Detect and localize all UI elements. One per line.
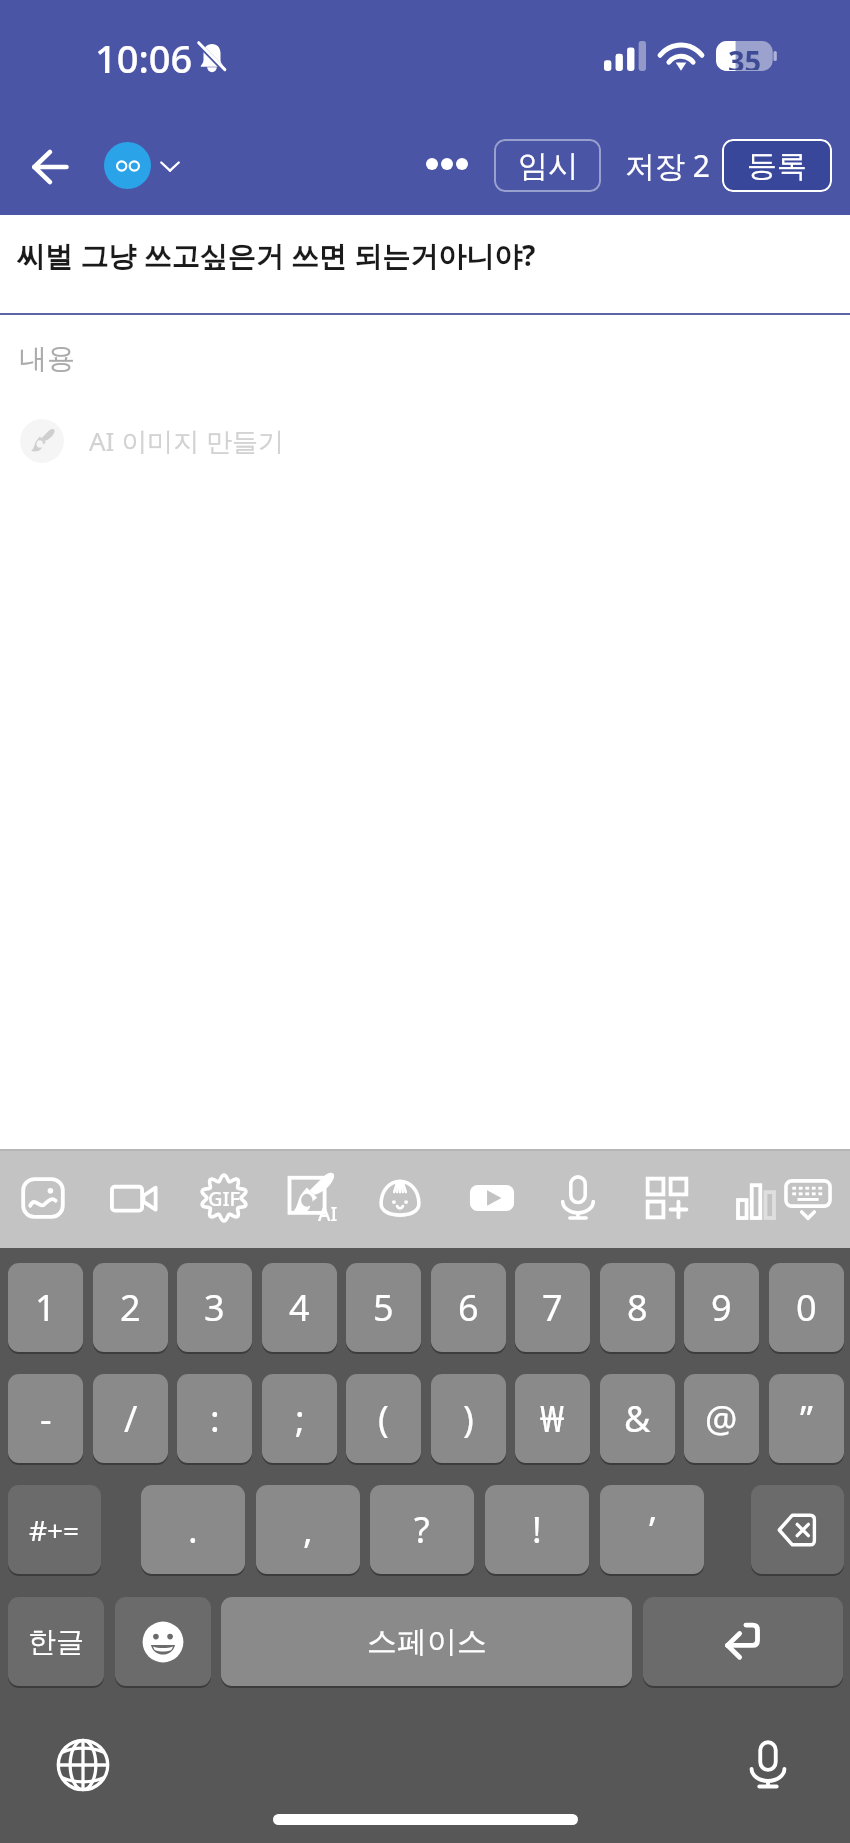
staticText: @ — [705, 1394, 738, 1443]
staticText: AI — [318, 1201, 338, 1227]
button[interactable]: Back — [14, 131, 86, 203]
button[interactable]: Backspace — [751, 1485, 844, 1574]
button[interactable]: Voice — [543, 1163, 613, 1233]
button[interactable]: 한글 — [8, 1597, 104, 1686]
staticText: ; — [295, 1394, 305, 1443]
staticText: 저장 2 — [625, 145, 710, 186]
button[interactable]: AI image — [277, 1163, 347, 1233]
staticText: & — [624, 1394, 651, 1443]
button[interactable]: 1 — [8, 1263, 83, 1352]
button[interactable] — [104, 142, 184, 189]
staticText: 9 — [711, 1283, 732, 1332]
staticText: 4 — [289, 1283, 310, 1332]
button[interactable]: Change language — [48, 1730, 118, 1800]
button[interactable]: More options — [418, 137, 476, 191]
button[interactable]: AI 이미지 만들기 — [20, 419, 284, 463]
button[interactable]: 9 — [684, 1263, 759, 1352]
staticText: 내용 — [19, 341, 75, 376]
staticText: 0 — [796, 1283, 817, 1332]
staticText: #+= — [29, 1511, 80, 1549]
button[interactable]: Poll — [721, 1163, 791, 1233]
staticText: GIF — [208, 1185, 241, 1212]
staticText: ! — [532, 1505, 542, 1554]
staticText: : — [210, 1394, 220, 1443]
staticText: 7 — [542, 1283, 563, 1332]
staticText: ) — [463, 1394, 474, 1443]
staticText: 6 — [458, 1283, 479, 1332]
staticText: - — [40, 1394, 52, 1443]
button[interactable]: ( — [346, 1374, 421, 1463]
staticText: ( — [378, 1394, 389, 1443]
button[interactable]: , — [256, 1485, 360, 1574]
button[interactable]: 저장 2 — [617, 139, 717, 192]
staticText: 임시 — [518, 147, 578, 185]
button[interactable]: 7 — [515, 1263, 590, 1352]
staticText: 8 — [627, 1283, 648, 1332]
button[interactable]: ; — [262, 1374, 337, 1463]
button[interactable]: ₩ — [515, 1374, 590, 1463]
staticText: ₩ — [540, 1394, 565, 1443]
button[interactable]: 2 — [93, 1263, 168, 1352]
staticText: 1 — [35, 1283, 56, 1332]
button[interactable]: Photo — [8, 1163, 78, 1233]
staticText: 2 — [120, 1283, 141, 1332]
staticText: ? — [414, 1505, 430, 1554]
staticText: ” — [800, 1394, 813, 1443]
button[interactable]: Dictation — [733, 1730, 803, 1800]
button[interactable]: : — [177, 1374, 252, 1463]
button[interactable]: & — [600, 1374, 675, 1463]
button[interactable]: 씨벌 그냥 쓰고싶은거 쓰면 되는거아니야? — [0, 215, 850, 313]
button[interactable]: / — [93, 1374, 168, 1463]
staticText: / — [124, 1394, 138, 1443]
staticText: 10:06 — [95, 32, 193, 84]
staticText: 5 — [373, 1283, 394, 1332]
button[interactable]: 6 — [431, 1263, 506, 1352]
staticText: 스페이스 — [367, 1623, 487, 1661]
button[interactable]: Emoji — [115, 1597, 211, 1686]
staticText: 35 — [728, 41, 762, 70]
button[interactable]: GIF — [189, 1163, 259, 1233]
button[interactable]: YouTube — [457, 1163, 527, 1233]
button[interactable]: ! — [485, 1485, 589, 1574]
button[interactable]: Hide keyboard — [773, 1163, 843, 1233]
button[interactable]: 5 — [346, 1263, 421, 1352]
button[interactable]: 3 — [177, 1263, 252, 1352]
button[interactable]: 8 — [600, 1263, 675, 1352]
button[interactable]: #+= — [8, 1485, 101, 1574]
button[interactable]: 임시 — [494, 139, 601, 192]
staticText: 한글 — [28, 1624, 84, 1659]
button[interactable]: ) — [431, 1374, 506, 1463]
staticText: AI 이미지 만들기 — [89, 423, 284, 459]
button[interactable]: Sticker — [365, 1163, 435, 1233]
button[interactable]: - — [8, 1374, 83, 1463]
staticText: 씨벌 그냥 쓰고싶은거 쓰면 되는거아니야? — [17, 236, 536, 274]
button[interactable]: Video — [99, 1163, 169, 1233]
button[interactable]: Enter — [643, 1597, 843, 1686]
staticText: , — [303, 1505, 313, 1554]
staticText: 3 — [204, 1283, 225, 1332]
button[interactable]: 4 — [262, 1263, 337, 1352]
button[interactable]: 0 — [769, 1263, 844, 1352]
button[interactable]: ” — [769, 1374, 844, 1463]
button[interactable]: 스페이스 — [221, 1597, 632, 1686]
staticText: 등록 — [747, 147, 807, 185]
staticText: . — [188, 1505, 198, 1554]
staticText: ’ — [649, 1505, 656, 1554]
button[interactable]: ’ — [600, 1485, 704, 1574]
button[interactable]: ? — [370, 1485, 474, 1574]
button[interactable]: More — [632, 1163, 702, 1233]
button[interactable]: . — [141, 1485, 245, 1574]
button[interactable]: @ — [684, 1374, 759, 1463]
button[interactable]: 등록 — [722, 139, 832, 192]
